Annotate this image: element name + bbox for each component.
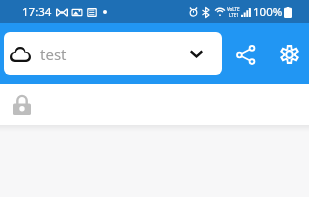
- button[interactable]: Share: [222, 32, 265, 75]
- button[interactable]: test: [4, 32, 222, 75]
- button[interactable]: Settings: [265, 32, 308, 75]
- staticText: 100%: [253, 4, 283, 20]
- staticText: 17:34: [22, 4, 52, 20]
- staticText: VoLTE: [227, 6, 240, 12]
- staticText: LTE1: [229, 12, 239, 18]
- staticText: test: [40, 44, 67, 64]
